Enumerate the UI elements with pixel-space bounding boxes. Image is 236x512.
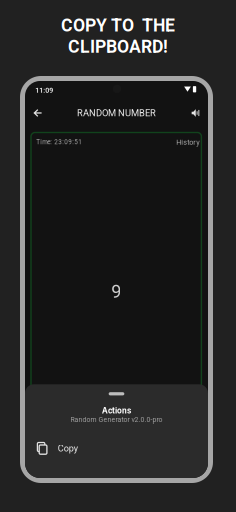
button[interactable]: Copy <box>25 437 208 459</box>
staticText: CLIPBOARD! <box>68 36 168 57</box>
staticText: 9 <box>111 281 121 302</box>
staticText: RANDOM NUMBER <box>77 107 156 118</box>
staticText: Copy <box>58 443 78 454</box>
staticText: History <box>176 138 199 146</box>
button[interactable]: Back <box>25 101 50 125</box>
staticText: 11:09 <box>35 86 53 95</box>
button[interactable]: Sound <box>183 101 208 125</box>
staticText: Time: 23:09:51 <box>36 138 82 146</box>
staticText: Actions <box>102 406 131 416</box>
staticText: COPY TO THE <box>61 15 175 36</box>
button[interactable]: History <box>176 138 199 146</box>
staticText: Random Generator v2.0.0-pro <box>70 416 162 424</box>
